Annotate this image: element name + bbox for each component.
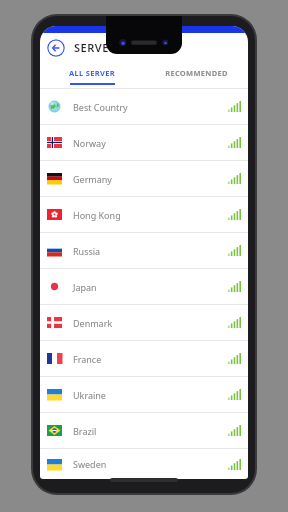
staticText: Denmark: [73, 317, 228, 329]
staticText: Norway: [73, 137, 228, 149]
staticText: Japan: [73, 281, 228, 293]
button[interactable]: France: [40, 341, 248, 377]
button[interactable]: Brazil: [40, 413, 248, 449]
staticText: RECOMMENDED: [165, 68, 228, 78]
button[interactable]: Hong Kong: [40, 197, 248, 233]
button[interactable]: Japan: [40, 269, 248, 305]
staticText: Sweden: [73, 458, 228, 470]
staticText: Ukraine: [73, 389, 228, 401]
button[interactable]: ALL SERVER: [40, 62, 144, 88]
staticText: Best Country: [73, 101, 228, 113]
staticText: Germany: [73, 173, 228, 185]
button[interactable]: Russia: [40, 233, 248, 269]
staticText: Hong Kong: [73, 209, 228, 221]
staticText: France: [73, 353, 228, 365]
button[interactable]: Sweden: [40, 449, 248, 479]
staticText: ALL SERVER: [69, 68, 115, 78]
button[interactable]: Denmark: [40, 305, 248, 341]
staticText: SERVER: [74, 40, 117, 55]
staticText: Russia: [73, 245, 228, 257]
staticText: Brazil: [73, 425, 228, 437]
button[interactable]: RECOMMENDED: [144, 62, 248, 88]
button[interactable]: Norway: [40, 125, 248, 161]
button[interactable]: Back: [47, 39, 65, 57]
button[interactable]: Germany: [40, 161, 248, 197]
button[interactable]: Ukraine: [40, 377, 248, 413]
button[interactable]: Best Country: [40, 89, 248, 125]
